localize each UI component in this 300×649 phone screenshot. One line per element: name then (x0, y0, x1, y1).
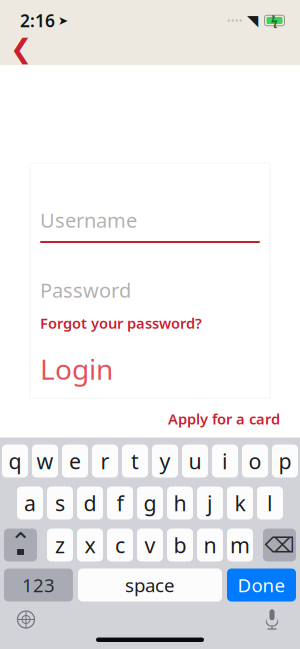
staticText: v (144, 531, 155, 559)
staticText: j (207, 489, 213, 517)
staticText: g (143, 489, 156, 517)
button[interactable]: r (92, 444, 118, 477)
button[interactable]: m (227, 528, 253, 561)
button[interactable]: k (227, 486, 253, 519)
staticText: Forgot your password? (40, 313, 202, 333)
staticText: c (115, 531, 125, 559)
button[interactable]: Forgot your password? (40, 316, 202, 330)
button[interactable]: e (62, 444, 88, 477)
staticText: u (188, 447, 201, 475)
staticText: s (55, 489, 65, 517)
staticText: 123 (22, 573, 55, 597)
staticText: ⌫ (264, 533, 294, 557)
staticText: ⌃ (10, 528, 31, 556)
staticText: e (69, 447, 81, 475)
button[interactable]: z (47, 528, 73, 561)
staticText: q (8, 447, 21, 475)
staticText: z (55, 531, 65, 559)
staticText: t (131, 447, 139, 475)
staticText: h (173, 489, 186, 517)
staticText: space (125, 573, 175, 597)
button[interactable]: 123 (4, 568, 73, 601)
button[interactable]: b (167, 528, 193, 561)
staticText: ➤ (58, 14, 68, 27)
staticText: a (24, 489, 36, 517)
button[interactable]: g (137, 486, 163, 519)
staticText: x (84, 531, 95, 559)
button[interactable]: Delete (263, 528, 296, 561)
button[interactable]: v (137, 528, 163, 561)
button[interactable]: j (197, 486, 223, 519)
button[interactable]: Done (227, 568, 296, 601)
button[interactable]: q (2, 444, 28, 477)
staticText: 2:16 (20, 9, 55, 32)
button[interactable]: Back (4, 33, 38, 63)
button[interactable]: i (212, 444, 238, 477)
button[interactable]: d (77, 486, 103, 519)
staticText: Username (40, 207, 137, 233)
staticText: d (83, 489, 96, 517)
staticText: o (248, 447, 261, 475)
staticText: k (234, 489, 245, 517)
staticText: ❮ (10, 33, 32, 64)
button[interactable]: w (32, 444, 58, 477)
staticText: i (222, 447, 228, 475)
staticText: b (173, 531, 186, 559)
staticText: f (116, 489, 123, 517)
button[interactable]: s (47, 486, 73, 519)
staticText: y (159, 447, 170, 475)
button[interactable]: n (197, 528, 223, 561)
button[interactable]: x (77, 528, 103, 561)
staticText: Login (40, 350, 113, 388)
button[interactable]: h (167, 486, 193, 519)
button[interactable]: o (242, 444, 268, 477)
staticText: p (278, 447, 291, 475)
button[interactable]: a (17, 486, 43, 519)
staticText: w (36, 447, 53, 475)
button[interactable]: c (107, 528, 133, 561)
button[interactable]: Login (40, 356, 113, 382)
button[interactable]: y (152, 444, 178, 477)
button[interactable]: f (107, 486, 133, 519)
staticText: r (100, 447, 109, 475)
staticText: Password (40, 277, 131, 303)
staticText: m (230, 531, 250, 559)
button[interactable]: l (257, 486, 283, 519)
staticText: ◥ (247, 12, 258, 29)
button[interactable]: space (78, 568, 222, 601)
button[interactable]: Dictate (262, 608, 282, 630)
staticText: ϟ (271, 12, 278, 28)
button[interactable]: Next keyboard (16, 609, 36, 629)
staticText: Done (237, 573, 285, 597)
button[interactable]: Shift (4, 528, 37, 561)
staticText: Apply for a card (168, 409, 280, 428)
button[interactable]: u (182, 444, 208, 477)
button[interactable]: t (122, 444, 148, 477)
staticText: l (267, 489, 273, 517)
staticText: n (203, 531, 216, 559)
button[interactable]: Apply for a card (168, 409, 280, 428)
button[interactable]: p (272, 444, 298, 477)
